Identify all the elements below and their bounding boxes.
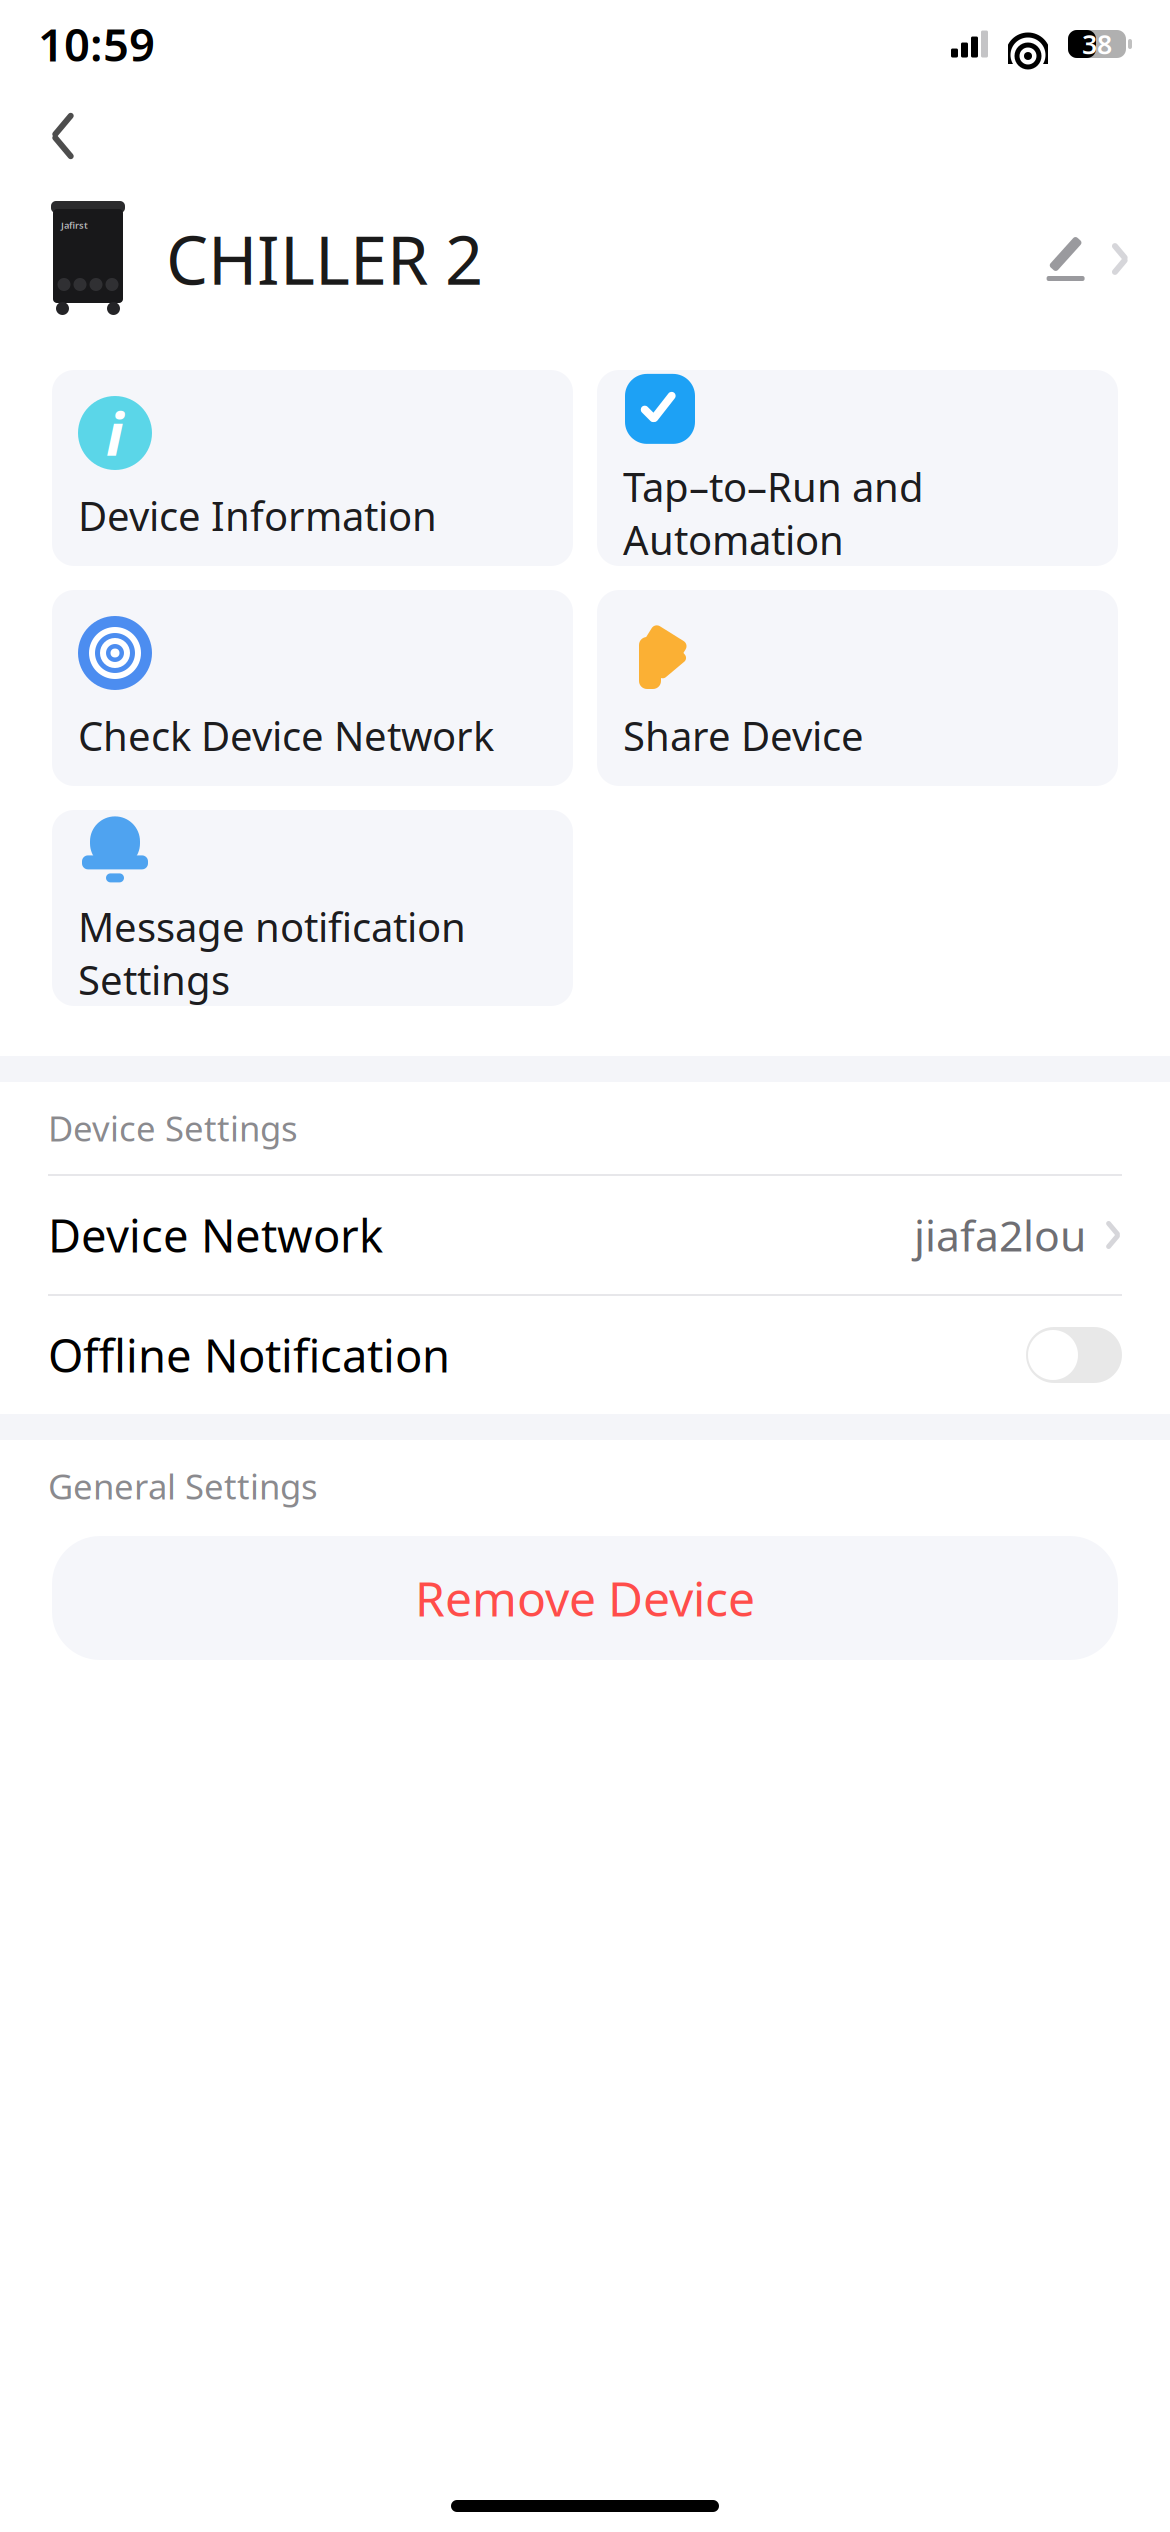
staticText: General Settings — [48, 1463, 318, 1509]
staticText: 38 — [1082, 26, 1112, 62]
button[interactable]: Back — [22, 94, 104, 178]
staticText: Share Device — [623, 709, 864, 762]
button[interactable]: Device details — [1096, 230, 1144, 288]
button[interactable]: Tap–to–Run and Automation — [597, 370, 1118, 566]
staticText: Device Information — [78, 489, 437, 542]
button[interactable]: Remove Device — [52, 1536, 1118, 1660]
staticText: Device Settings — [48, 1105, 298, 1151]
button[interactable]: Rename device — [1036, 224, 1096, 294]
staticText: Device Network — [48, 1205, 383, 1265]
button[interactable]: Check Device Network — [52, 590, 573, 786]
staticText: i — [106, 394, 124, 472]
button[interactable]: Message notification Settings — [52, 810, 573, 1006]
staticText: Tap–to–Run and Automation — [623, 460, 924, 566]
button[interactable]: Offline Notification toggle — [0, 1296, 1170, 1414]
staticText: jiafa2lou — [914, 1207, 1086, 1263]
staticText: Check Device Network — [78, 709, 494, 762]
button[interactable]: Device Network — [0, 1176, 1170, 1294]
button[interactable]: Share Device — [597, 590, 1118, 786]
staticText: Jafirst — [61, 219, 88, 231]
staticText: Remove Device — [415, 1566, 755, 1630]
staticText: CHILLER 2 — [166, 215, 483, 303]
staticText: Message notification Settings — [78, 900, 466, 1006]
staticText: Offline Notification — [48, 1325, 450, 1385]
button[interactable]: i — [52, 370, 573, 566]
staticText: 10:59 — [38, 14, 155, 74]
